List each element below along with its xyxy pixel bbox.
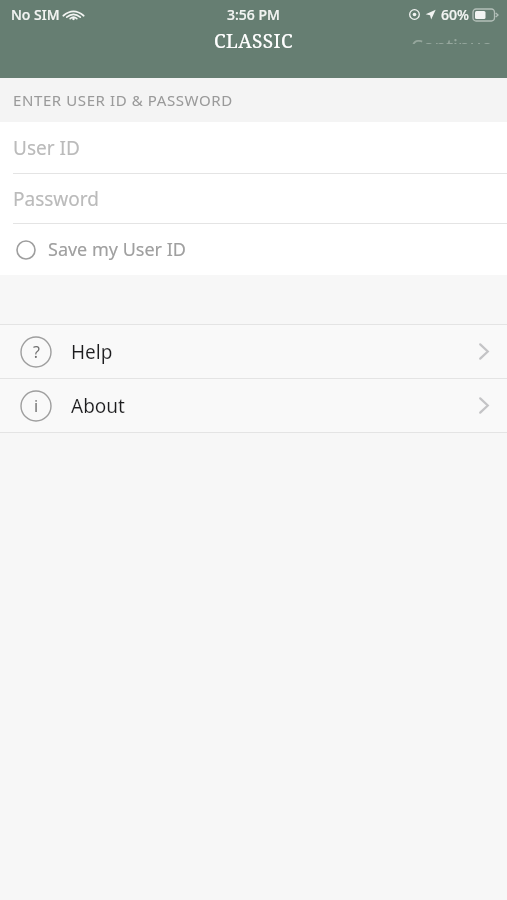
- staticText: 60%: [441, 5, 469, 24]
- staticText: CLASSIC: [214, 28, 294, 50]
- button[interactable]: i: [0, 379, 507, 432]
- staticText: ENTER USER ID & PASSWORD: [13, 90, 233, 110]
- staticText: i: [34, 395, 39, 417]
- staticText: Save my User ID: [48, 237, 186, 262]
- button[interactable]: User ID: [0, 122, 507, 173]
- button[interactable]: Save my User ID: [0, 224, 507, 275]
- button[interactable]: Password: [0, 174, 507, 223]
- staticText: Continue: [411, 34, 493, 44]
- staticText: 3:56 PM: [227, 5, 280, 24]
- other: Open About: [479, 397, 489, 414]
- staticText: Password: [13, 186, 99, 212]
- button[interactable]: Continue: [397, 28, 507, 50]
- staticText: ?: [33, 341, 40, 363]
- button[interactable]: ?: [0, 325, 507, 378]
- other: Open Help: [479, 343, 489, 360]
- staticText: Help: [71, 339, 113, 365]
- staticText: About: [71, 393, 125, 419]
- staticText: No SIM: [11, 5, 60, 24]
- staticText: User ID: [13, 135, 80, 161]
